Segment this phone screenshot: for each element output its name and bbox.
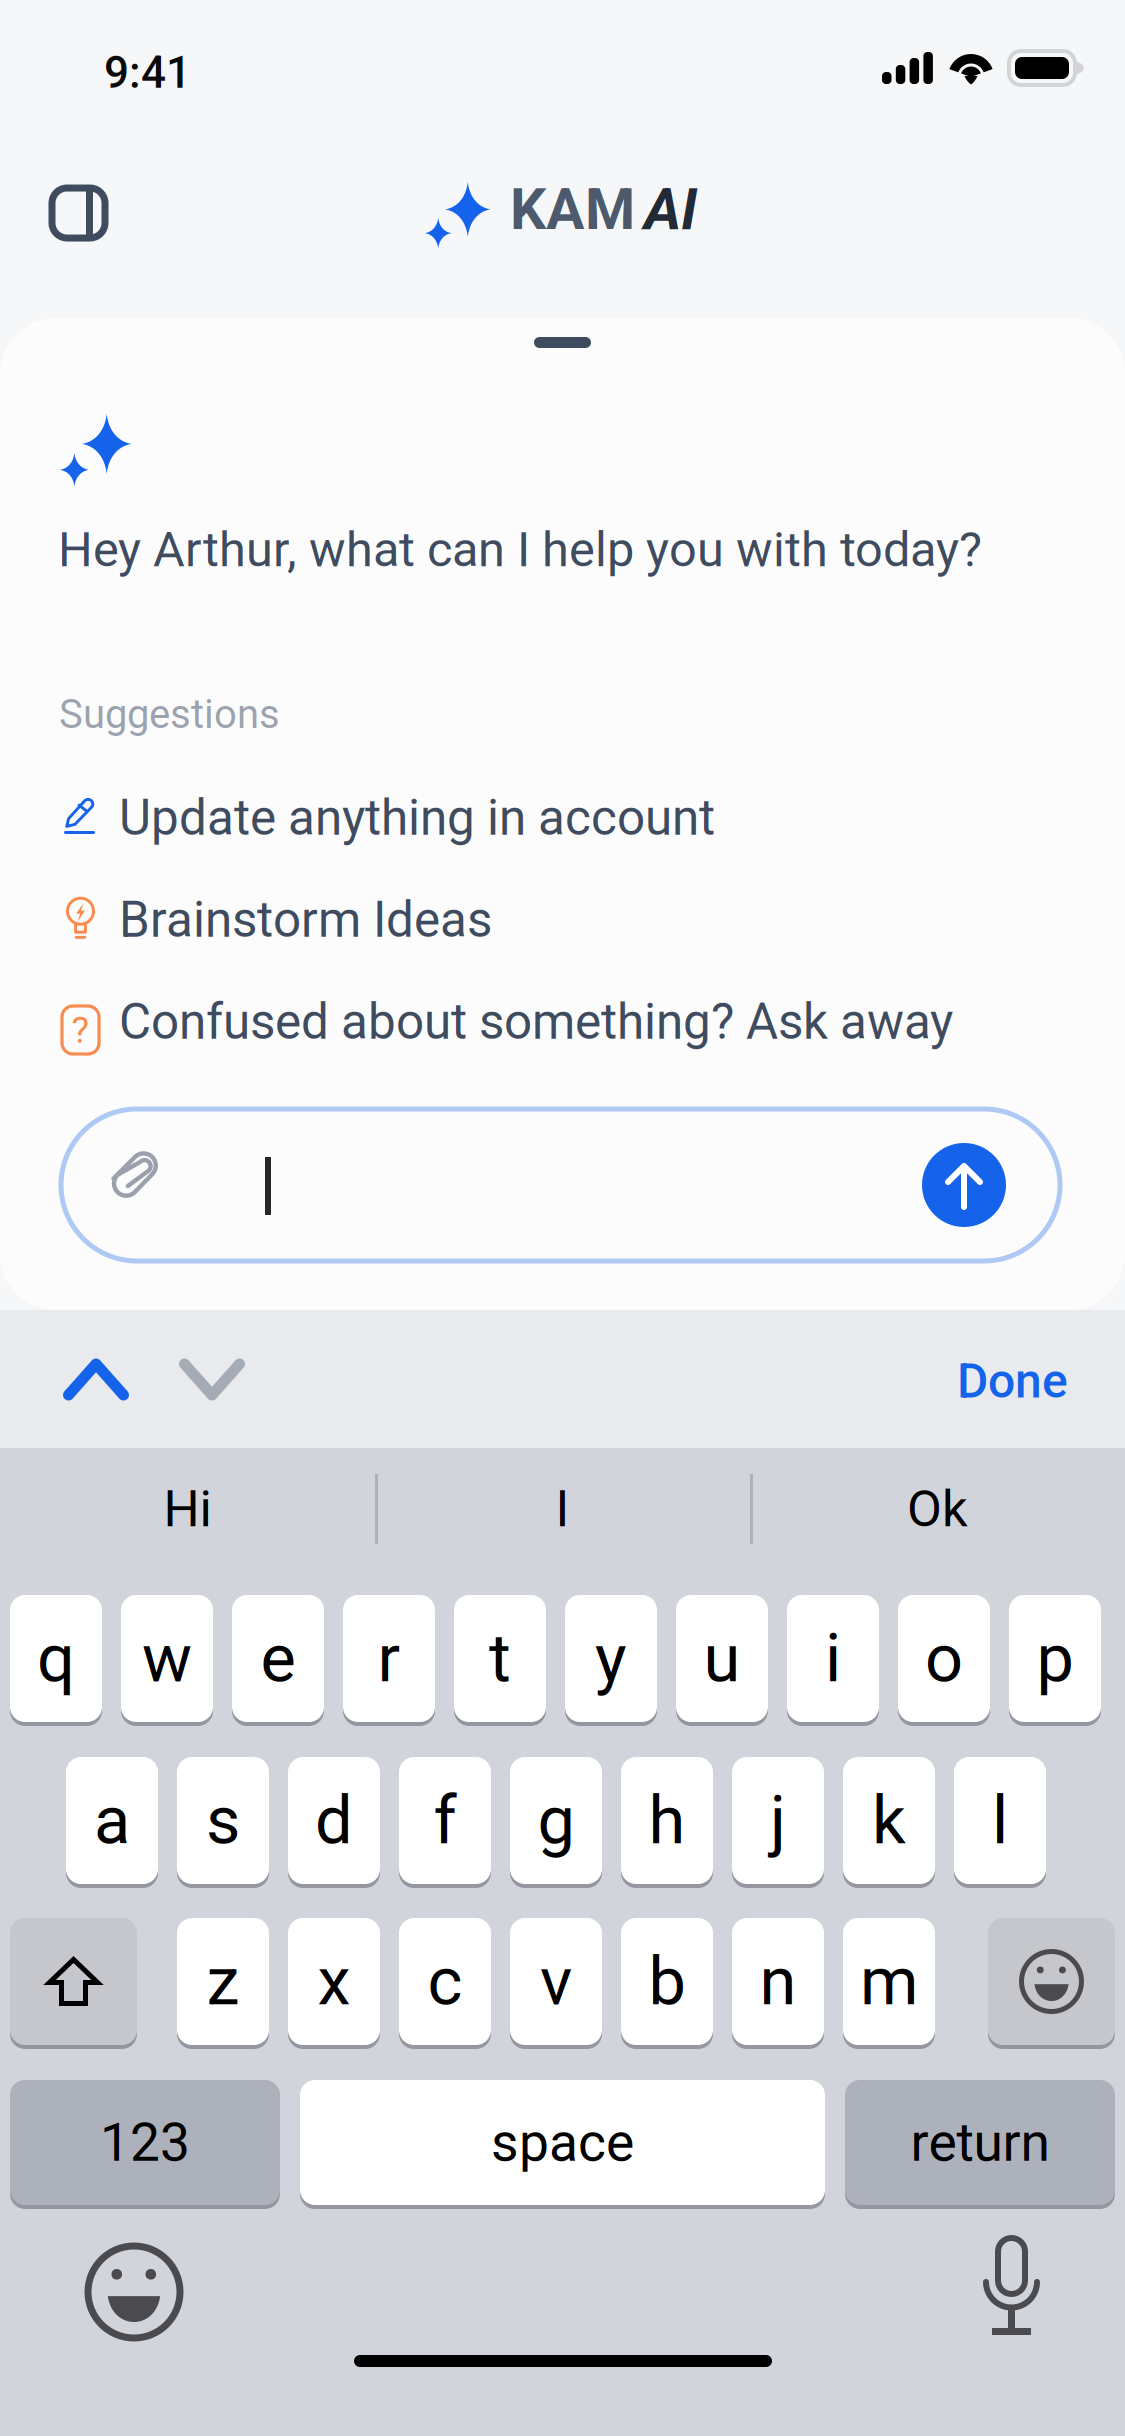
staticText: m bbox=[860, 1942, 918, 2020]
button[interactable]: e bbox=[232, 1595, 324, 1727]
button[interactable]: a bbox=[66, 1757, 158, 1889]
staticText: Done bbox=[957, 1353, 1068, 1409]
staticText: Hi bbox=[163, 1479, 211, 1539]
button[interactable]: b bbox=[621, 1918, 713, 2050]
button[interactable]: Update anything in account bbox=[0, 789, 1125, 891]
staticText: t bbox=[489, 1619, 511, 1697]
staticText: h bbox=[648, 1781, 685, 1859]
staticText: n bbox=[759, 1942, 796, 2020]
staticText: return bbox=[910, 2111, 1049, 2174]
staticText: AI bbox=[644, 176, 697, 243]
button[interactable]: c bbox=[399, 1918, 491, 2050]
staticText: z bbox=[206, 1942, 239, 2020]
button[interactable]: Ok bbox=[750, 1448, 1125, 1570]
staticText: a bbox=[94, 1781, 130, 1859]
button[interactable]: i bbox=[787, 1595, 879, 1727]
button[interactable]: v bbox=[510, 1918, 602, 2050]
staticText: 9:41 bbox=[104, 47, 191, 99]
button[interactable]: Toggle sidebar bbox=[40, 176, 116, 252]
button[interactable]: l bbox=[954, 1757, 1046, 1889]
button[interactable]: s bbox=[177, 1757, 269, 1889]
button[interactable]: h bbox=[621, 1757, 713, 1889]
button[interactable]: m bbox=[843, 1918, 935, 2050]
button[interactable]: k bbox=[843, 1757, 935, 1889]
staticText: KAM bbox=[510, 176, 635, 243]
button[interactable]: Next field bbox=[156, 1335, 268, 1424]
staticText: x bbox=[317, 1942, 350, 2020]
staticText: q bbox=[37, 1619, 75, 1697]
staticText: i bbox=[825, 1619, 841, 1697]
staticText: p bbox=[1036, 1619, 1073, 1697]
staticText: Ok bbox=[907, 1479, 968, 1539]
staticText: r bbox=[377, 1619, 400, 1697]
staticText: space bbox=[491, 2111, 634, 2174]
staticText: v bbox=[540, 1942, 572, 2020]
button[interactable]: Emoji keyboard bbox=[78, 2236, 190, 2348]
staticText: s bbox=[206, 1781, 240, 1859]
button[interactable]: t bbox=[454, 1595, 546, 1727]
button[interactable]: y bbox=[565, 1595, 657, 1727]
button[interactable]: j bbox=[732, 1757, 824, 1889]
staticText: y bbox=[595, 1619, 627, 1697]
staticText: Hey Arthur, what can I help you with tod… bbox=[58, 521, 982, 578]
button[interactable] bbox=[988, 1918, 1115, 2050]
button[interactable]: p bbox=[1009, 1595, 1101, 1727]
staticText: 123 bbox=[100, 2111, 190, 2174]
button[interactable]: Previous field bbox=[40, 1335, 152, 1424]
staticText: o bbox=[925, 1619, 963, 1697]
button[interactable]: d bbox=[288, 1757, 380, 1889]
button[interactable]: g bbox=[510, 1757, 602, 1889]
button[interactable]: x bbox=[288, 1918, 380, 2050]
staticText: u bbox=[703, 1619, 740, 1697]
staticText: Brainstorm Ideas bbox=[119, 891, 492, 949]
staticText: Update anything in account bbox=[119, 789, 715, 847]
staticText: k bbox=[872, 1781, 906, 1859]
staticText: j bbox=[770, 1781, 786, 1859]
staticText: e bbox=[260, 1619, 295, 1697]
button[interactable]: I bbox=[375, 1448, 750, 1570]
staticText: b bbox=[648, 1942, 685, 2020]
staticText: Confused about something? Ask away bbox=[119, 993, 953, 1051]
button[interactable]: Dictation bbox=[968, 2226, 1054, 2352]
button[interactable]: f bbox=[399, 1757, 491, 1889]
staticText: f bbox=[433, 1781, 456, 1859]
staticText: g bbox=[537, 1781, 574, 1859]
button[interactable]: r bbox=[343, 1595, 435, 1727]
button[interactable]: z bbox=[177, 1918, 269, 2050]
button[interactable]: space bbox=[300, 2080, 825, 2210]
staticText: l bbox=[992, 1781, 1008, 1859]
button[interactable]: Send bbox=[922, 1143, 1006, 1227]
staticText: d bbox=[315, 1781, 353, 1859]
button[interactable]: Brainstorm Ideas bbox=[0, 891, 1125, 993]
staticText: Suggestions bbox=[59, 691, 280, 738]
staticText: I bbox=[555, 1479, 569, 1539]
button[interactable]: 123 bbox=[10, 2080, 280, 2210]
button[interactable]: Hi bbox=[0, 1448, 375, 1570]
staticText: w bbox=[142, 1619, 192, 1697]
button[interactable] bbox=[10, 1918, 137, 2050]
button[interactable]: Done bbox=[939, 1335, 1086, 1427]
button[interactable]: w bbox=[121, 1595, 213, 1727]
button[interactable]: u bbox=[676, 1595, 768, 1727]
button[interactable]: o bbox=[898, 1595, 990, 1727]
button[interactable]: return bbox=[845, 2080, 1115, 2210]
button[interactable]: q bbox=[10, 1595, 102, 1727]
button[interactable]: ? bbox=[0, 993, 1125, 1095]
button[interactable]: n bbox=[732, 1918, 824, 2050]
staticText: ? bbox=[71, 1008, 89, 1052]
staticText: c bbox=[427, 1942, 462, 2020]
